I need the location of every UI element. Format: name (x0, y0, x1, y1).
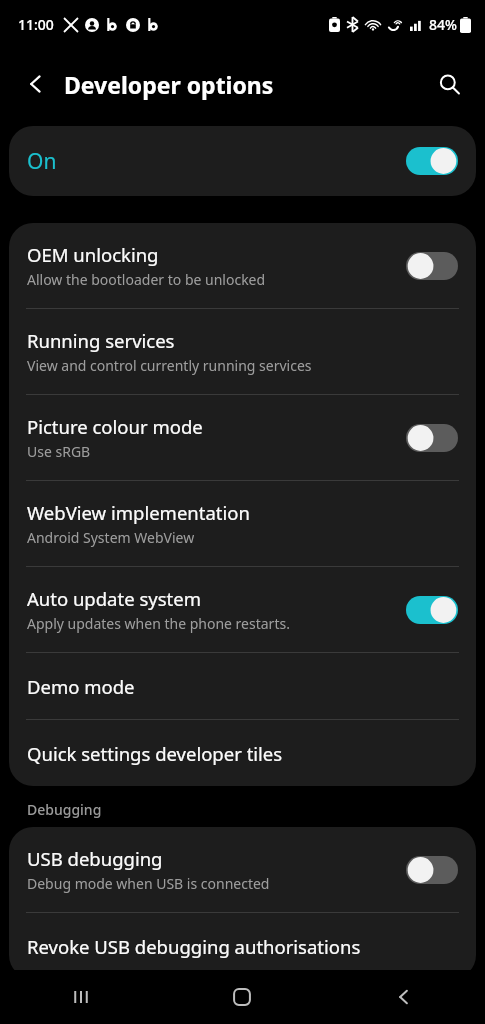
button[interactable]: Home (161, 970, 323, 1024)
button[interactable]: WebView implementation (9, 481, 476, 566)
button[interactable]: Picture colour mode (9, 395, 476, 480)
staticText: USB debugging (27, 846, 163, 871)
staticText: Apply updates when the phone restarts. (27, 614, 290, 633)
staticText: OEM unlocking (27, 242, 159, 267)
staticText: Debug mode when USB is connected (27, 874, 270, 893)
staticText: Developer options (64, 69, 274, 100)
staticText: Quick settings developer tiles (27, 741, 283, 766)
staticText: WebView implementation (27, 500, 250, 525)
staticText: 11:00 (18, 15, 54, 34)
button[interactable]: Toggle off (406, 856, 458, 884)
button[interactable]: Back (323, 970, 485, 1024)
button[interactable]: Recent apps (0, 970, 161, 1024)
staticText: Debugging (27, 800, 102, 819)
staticText: Allow the bootloader to be unlocked (27, 270, 266, 289)
staticText: Use sRGB (27, 442, 91, 461)
staticText: Auto update system (27, 586, 201, 611)
staticText: Demo mode (27, 674, 135, 699)
button[interactable]: Toggle on (406, 596, 458, 624)
button[interactable]: On (9, 126, 476, 196)
staticText: On (27, 147, 57, 176)
button[interactable]: Toggle off (406, 252, 458, 280)
button[interactable]: Auto update system (9, 567, 476, 652)
button[interactable]: Back (14, 62, 58, 106)
button[interactable]: USB debugging (9, 827, 476, 912)
staticText: Revoke USB debugging authorisations (27, 934, 361, 959)
staticText: Picture colour mode (27, 414, 203, 439)
staticText: Android System WebView (27, 528, 195, 547)
button[interactable]: Running services (9, 309, 476, 394)
staticText: Running services (27, 328, 175, 353)
button[interactable]: Toggle off (406, 424, 458, 452)
button[interactable]: Revoke USB debugging authorisations (9, 913, 476, 979)
staticText: 84% (429, 15, 457, 34)
button[interactable]: Demo mode (9, 653, 476, 719)
staticText: View and control currently running servi… (27, 356, 312, 375)
button[interactable]: Quick settings developer tiles (9, 720, 476, 786)
button[interactable]: Search (427, 62, 471, 106)
button[interactable]: Toggle on (406, 147, 458, 175)
button[interactable]: OEM unlocking (9, 223, 476, 308)
